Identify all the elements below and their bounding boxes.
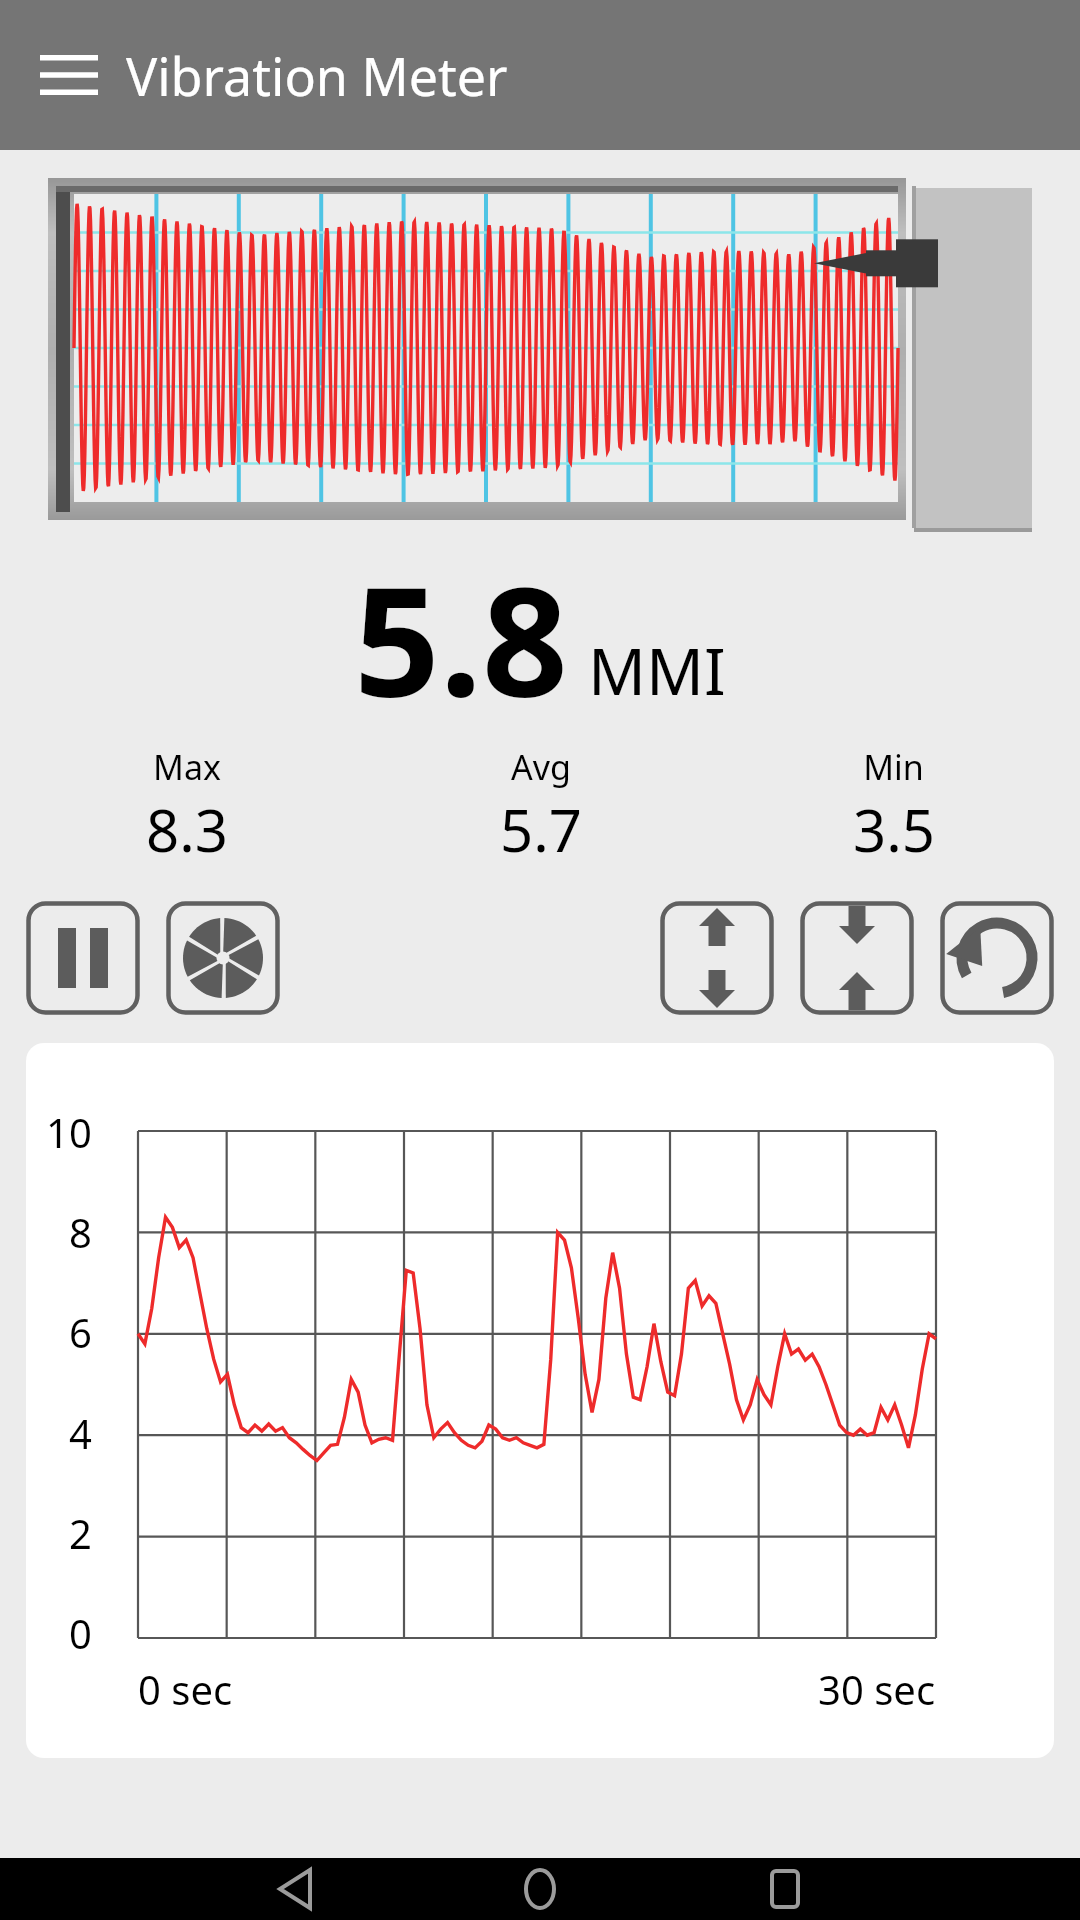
staticText: 5.8 [354,536,568,740]
staticText: 3.5 [853,790,935,869]
staticText: 4 [69,1406,92,1460]
button[interactable]: Expand scale [660,901,774,1015]
staticText: 5.7 [500,790,582,869]
button[interactable]: Capture snapshot [166,901,280,1015]
button[interactable]: Open navigation menu [36,43,102,107]
staticText: Min [863,744,924,790]
staticText: Avg [511,744,571,790]
button[interactable]: Shrink scale [800,901,914,1015]
staticText: 0 [69,1606,92,1660]
staticText: MMI [588,627,726,714]
staticText: 10 [46,1105,92,1159]
staticText: 6 [69,1305,92,1359]
staticText: 8 [69,1205,92,1259]
staticText: Vibration Meter [126,40,508,111]
staticText: 8.3 [146,790,228,869]
button[interactable]: Recent apps [749,1858,821,1920]
button[interactable]: Home [504,1858,576,1920]
staticText: Max [153,744,221,790]
button[interactable]: Back [259,1858,331,1920]
button[interactable]: Reset [940,901,1054,1015]
button[interactable]: Pause [26,901,140,1015]
staticText: 2 [69,1506,92,1560]
staticText: 0 sec [138,1662,233,1716]
staticText: 30 sec [818,1662,936,1716]
